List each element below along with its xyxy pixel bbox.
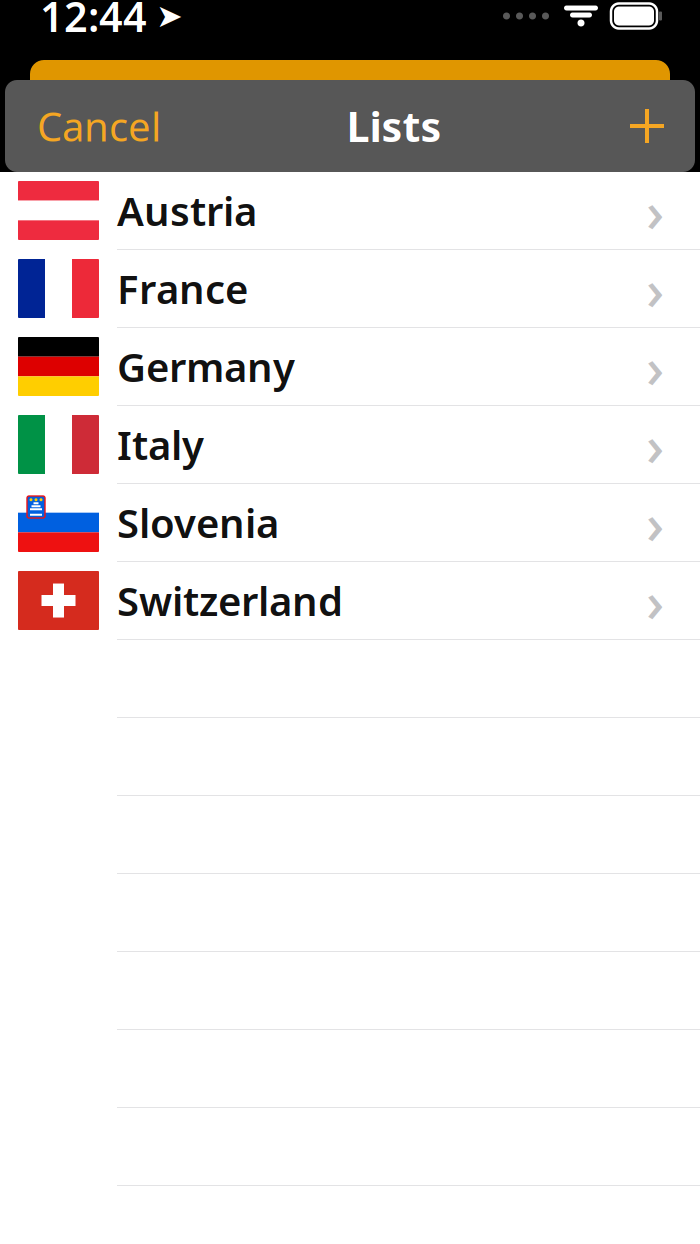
staticText: ➤ <box>156 0 183 34</box>
staticText: › <box>646 251 664 326</box>
staticText: Germany <box>117 340 295 393</box>
button[interactable]: Add list <box>627 92 695 160</box>
staticText: Italy <box>117 418 204 471</box>
button[interactable]: Italy <box>0 406 700 484</box>
staticText: › <box>646 407 664 482</box>
staticText: Cancel <box>37 99 161 152</box>
button[interactable]: Slovenia <box>0 484 700 562</box>
button[interactable]: Germany <box>0 328 700 406</box>
staticText: Austria <box>117 184 257 237</box>
button[interactable]: France <box>0 250 700 328</box>
button[interactable]: Switzerland <box>0 562 700 640</box>
staticText: › <box>646 485 664 560</box>
staticText: › <box>646 563 664 638</box>
staticText: › <box>646 173 664 248</box>
button[interactable]: Austria <box>0 172 700 250</box>
staticText: France <box>117 262 248 315</box>
staticText: Slovenia <box>117 496 279 549</box>
staticText: › <box>646 329 664 404</box>
staticText: Switzerland <box>117 574 343 627</box>
staticText: Lists <box>346 99 441 153</box>
button[interactable]: Cancel <box>5 81 161 170</box>
staticText: 12:44 <box>40 0 147 43</box>
